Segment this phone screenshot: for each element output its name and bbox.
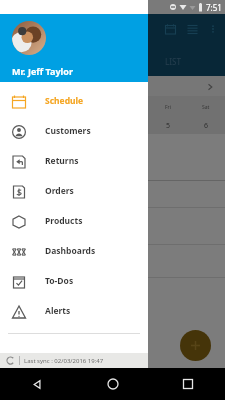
button[interactable]: List view xyxy=(181,18,203,40)
staticText: Products xyxy=(45,215,83,227)
button[interactable]: Recent apps xyxy=(150,368,225,400)
staticText: Alerts xyxy=(45,305,71,317)
staticText: 7:51 xyxy=(206,2,222,13)
staticText: To-Dos xyxy=(45,275,74,287)
button[interactable]: LIST xyxy=(165,56,181,67)
staticText: 6 xyxy=(204,121,209,131)
staticText: Dashboards xyxy=(45,245,96,257)
staticText: 5 xyxy=(166,121,171,131)
button[interactable]: Customers xyxy=(0,116,148,146)
button[interactable]: Products xyxy=(0,206,148,236)
staticText: 2 xyxy=(53,121,58,131)
staticText: Fri xyxy=(165,104,171,111)
button[interactable]: To-Dos xyxy=(0,266,148,296)
button[interactable]: Calendar xyxy=(159,18,181,40)
staticText: Orders xyxy=(45,185,74,197)
staticText: Sat xyxy=(202,104,210,111)
button[interactable]: Returns xyxy=(0,146,148,176)
button[interactable]: Home xyxy=(75,368,150,400)
button[interactable]: Last sync : 02/03/2016 19:47 xyxy=(0,353,148,368)
staticText: Mon xyxy=(13,104,24,111)
button[interactable]: Alerts xyxy=(0,296,148,326)
staticText: Mr. Jeff Taylor xyxy=(12,65,73,77)
button[interactable]: Add xyxy=(180,330,211,361)
staticText: Global Search xyxy=(45,352,103,364)
button[interactable]: Back xyxy=(0,368,75,400)
button[interactable]: Profile photo xyxy=(12,21,46,55)
staticText: Returns xyxy=(45,155,79,167)
button[interactable] xyxy=(0,373,148,400)
staticText: Schedule xyxy=(45,95,84,107)
button[interactable]: Orders xyxy=(0,176,148,206)
button[interactable]: Dashboards xyxy=(0,236,148,266)
button[interactable]: Schedule xyxy=(0,86,148,116)
staticText: Customers xyxy=(45,125,91,137)
staticText: 3 xyxy=(90,121,95,131)
staticText: Last sync : 02/03/2016 19:47 xyxy=(24,357,104,365)
staticText: 1 xyxy=(16,121,21,131)
button[interactable]: Global Search xyxy=(0,343,148,373)
